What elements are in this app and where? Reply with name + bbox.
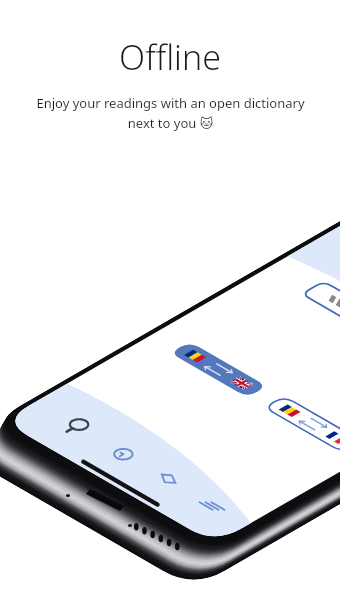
staticText: Enjoy your readings with an open diction…	[36, 94, 305, 132]
staticText: Offline	[119, 34, 221, 80]
